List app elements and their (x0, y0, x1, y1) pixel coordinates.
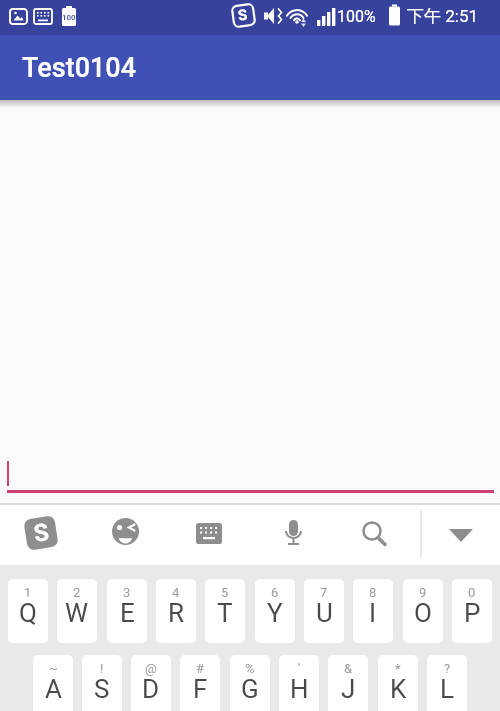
staticText: O (414, 598, 432, 628)
staticText: ~ (49, 661, 58, 676)
button[interactable]: 8 (353, 579, 393, 643)
staticText: 9 (419, 585, 427, 600)
button[interactable]: 0 (452, 579, 492, 643)
button[interactable] (97, 507, 153, 563)
staticText: S (237, 5, 249, 25)
staticText: U (316, 598, 333, 628)
staticText: % (245, 661, 255, 676)
staticText: 100 (62, 13, 76, 22)
button[interactable]: 3 (107, 579, 147, 643)
staticText: @ (145, 661, 157, 676)
staticText: ! (100, 661, 104, 676)
staticText: & (344, 661, 353, 676)
button[interactable]: 7 (304, 579, 344, 643)
staticText: W (65, 598, 89, 628)
staticText: * (395, 661, 401, 676)
staticText: S (94, 674, 110, 704)
staticText: K (390, 674, 407, 704)
staticText: E (120, 598, 135, 628)
button[interactable]: @ (131, 655, 171, 711)
staticText: 下午 2:51 (407, 6, 478, 27)
staticText: 1 (24, 585, 32, 600)
button[interactable]: 9 (403, 579, 443, 643)
staticText: Q (19, 598, 37, 628)
staticText: Y (267, 598, 283, 628)
staticText: 7 (320, 585, 328, 600)
staticText: ' (298, 661, 301, 676)
button[interactable]: * (378, 655, 418, 711)
staticText: 3 (123, 585, 131, 600)
staticText: Test0104 (22, 52, 137, 84)
staticText: F (193, 674, 208, 704)
button[interactable]: 4 (156, 579, 196, 643)
button[interactable] (0, 450, 500, 495)
staticText: T (217, 598, 233, 628)
button[interactable] (265, 507, 321, 563)
staticText: 5 (221, 585, 229, 600)
button[interactable]: % (230, 655, 270, 711)
button[interactable]: # (180, 655, 220, 711)
staticText: 2 (73, 585, 81, 600)
button[interactable]: ~ (33, 655, 73, 711)
button[interactable]: ? (427, 655, 467, 711)
button[interactable]: 2 (57, 579, 97, 643)
staticText: S (32, 518, 51, 548)
button[interactable]: ' (279, 655, 319, 711)
staticText: I (369, 598, 377, 628)
button[interactable] (181, 507, 237, 563)
staticText: 4 (172, 585, 180, 600)
staticText: # (196, 661, 205, 676)
button[interactable] (349, 507, 405, 563)
staticText: R (168, 598, 185, 628)
button[interactable]: 5 (205, 579, 245, 643)
button[interactable]: & (328, 655, 368, 711)
button[interactable] (433, 507, 489, 563)
staticText: G (241, 674, 259, 704)
staticText: D (142, 674, 160, 704)
staticText: L (440, 674, 455, 704)
staticText: H (290, 674, 309, 704)
staticText: P (464, 598, 481, 628)
staticText: A (45, 674, 62, 704)
staticText: 0 (468, 585, 476, 600)
staticText: ? (444, 661, 451, 676)
staticText: 6 (271, 585, 279, 600)
button[interactable]: ! (82, 655, 122, 711)
staticText: 100% (337, 7, 376, 26)
staticText: 8 (369, 585, 377, 600)
button[interactable]: 1 (8, 579, 48, 643)
button[interactable]: 6 (255, 579, 295, 643)
button[interactable] (13, 507, 69, 563)
staticText: J (341, 674, 356, 704)
